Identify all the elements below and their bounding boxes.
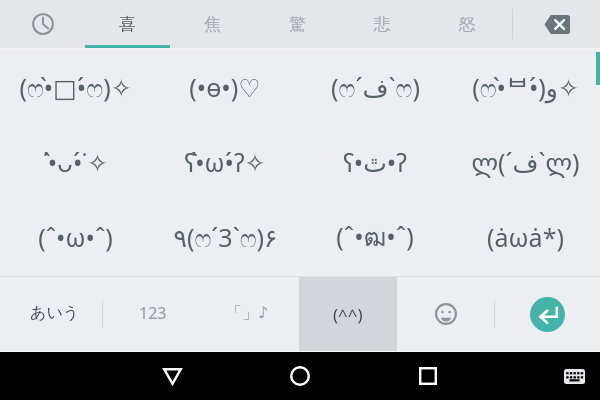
button[interactable]: (ෆ•̀ᄇ•́)و✧ xyxy=(450,49,600,124)
button[interactable]: Backspace xyxy=(513,0,600,48)
staticText: 焦 xyxy=(204,14,221,35)
button[interactable]: 怒 xyxy=(425,0,510,48)
button[interactable]: (^^) xyxy=(299,277,397,351)
staticText: 「」♪ xyxy=(226,303,269,323)
button[interactable]: あいう xyxy=(0,277,102,351)
staticText: (ෆ´ف`ෆ) xyxy=(331,70,420,104)
button[interactable]: ˙•̀ᴗ•́˙✧ xyxy=(0,124,150,199)
button[interactable]: Enter xyxy=(495,277,600,351)
button[interactable]: (ˆ•ω•ˆ) xyxy=(0,199,150,274)
button[interactable]: Back xyxy=(148,352,196,400)
button[interactable]: ʕ•ٿ•ʔ xyxy=(300,124,450,199)
staticText: (ȧωȧ*) xyxy=(487,220,564,254)
button[interactable]: ٩(ෆ´3`ෆ)۶ xyxy=(150,199,300,274)
button[interactable]: Switch keyboard xyxy=(550,352,598,400)
button[interactable]: Recent apps xyxy=(404,352,452,400)
staticText: 喜 xyxy=(119,14,136,35)
staticText: ლ(´ف`ლ) xyxy=(471,145,580,179)
button[interactable]: Home xyxy=(276,352,324,400)
staticText: (ˆ•ω•ˆ) xyxy=(38,220,113,254)
staticText: (•ө•)♡ xyxy=(189,70,261,104)
staticText: (^^) xyxy=(333,303,363,326)
staticText: 悲 xyxy=(374,14,391,35)
button[interactable]: Recently used xyxy=(0,0,85,48)
button[interactable]: (ȧωȧ*) xyxy=(450,199,600,274)
button[interactable]: (ෆ•̀□•́ෆ)✧ xyxy=(0,49,150,124)
staticText: 怒 xyxy=(459,14,476,35)
button[interactable]: 123 xyxy=(103,277,203,351)
staticText: (ˆ•ฒ•ˆ) xyxy=(336,217,414,257)
staticText: ʕ•ٿ•ʔ xyxy=(343,145,407,179)
button[interactable]: 驚 xyxy=(255,0,340,48)
button[interactable]: 喜 xyxy=(85,0,170,48)
staticText: ʕ•̀ω•́ʔ✧ xyxy=(184,145,266,179)
staticText: ˙•̀ᴗ•́˙✧ xyxy=(43,145,108,179)
staticText: (ෆ•̀ᄇ•́)و✧ xyxy=(472,70,579,104)
staticText: 123 xyxy=(139,302,167,324)
button[interactable]: 悲 xyxy=(340,0,425,48)
button[interactable]: ʕ•̀ω•́ʔ✧ xyxy=(150,124,300,199)
button[interactable]: Emoji xyxy=(397,277,494,351)
button[interactable]: (•ө•)♡ xyxy=(150,49,300,124)
button[interactable]: 焦 xyxy=(170,0,255,48)
button[interactable]: 「」♪ xyxy=(203,277,299,351)
button[interactable]: ლ(´ف`ლ) xyxy=(450,124,600,199)
staticText: ٩(ෆ´3`ෆ)۶ xyxy=(173,220,278,254)
staticText: 驚 xyxy=(289,14,306,35)
staticText: (ෆ•̀□•́ෆ)✧ xyxy=(19,70,132,104)
button[interactable]: (ˆ•ฒ•ˆ) xyxy=(300,199,450,274)
button[interactable]: (ෆ´ف`ෆ) xyxy=(300,49,450,124)
staticText: あいう xyxy=(30,303,80,323)
